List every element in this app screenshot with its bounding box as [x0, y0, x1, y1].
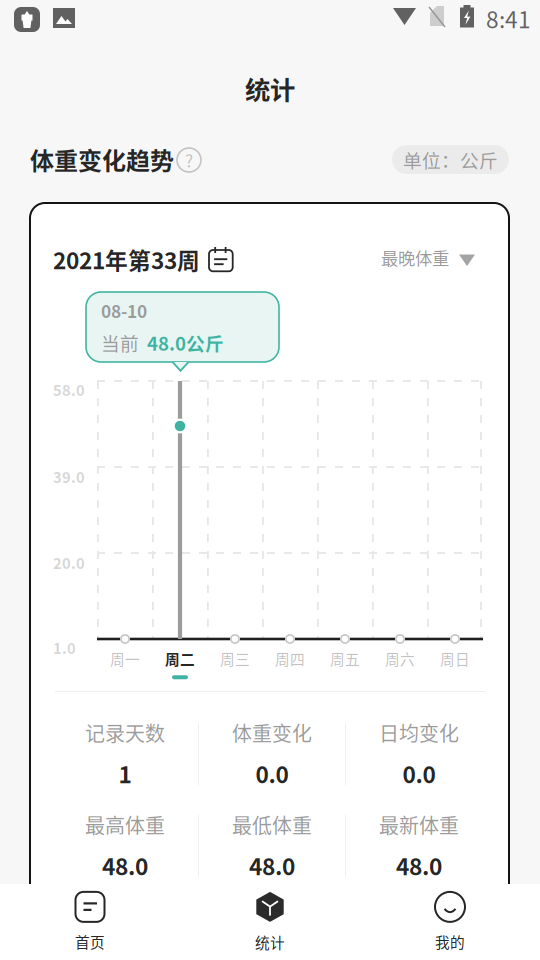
- staticText: 48.0: [249, 849, 295, 882]
- button[interactable]: 选择日期: [209, 247, 233, 272]
- staticText: 最高体重: [85, 810, 165, 839]
- staticText: 体重变化趋势: [30, 142, 174, 177]
- staticText: 48.0公斤: [147, 329, 224, 356]
- staticText: 单位：公斤: [403, 146, 498, 173]
- button[interactable]: 我的: [360, 884, 540, 960]
- staticText: 体重变化: [232, 718, 312, 747]
- staticText: 39.0: [53, 466, 85, 487]
- staticText: 最新体重: [379, 810, 459, 839]
- staticText: 48.0: [396, 849, 442, 882]
- staticText: 08-10: [101, 298, 147, 323]
- staticText: 统计: [245, 70, 295, 107]
- staticText: 周一: [110, 648, 140, 669]
- button[interactable]: 最晚体重: [381, 245, 475, 270]
- button[interactable]: 说明: [177, 148, 201, 172]
- staticText: 当前: [101, 329, 139, 356]
- button[interactable]: 单位：公斤: [392, 145, 509, 174]
- staticText: 我的: [435, 931, 465, 952]
- staticText: 0.0: [255, 757, 288, 790]
- staticText: 周六: [385, 648, 415, 669]
- staticText: 周四: [275, 648, 305, 669]
- staticText: 日均变化: [379, 718, 459, 747]
- staticText: 周日: [440, 648, 470, 669]
- staticText: ?: [185, 147, 193, 173]
- staticText: 1.0: [53, 637, 76, 658]
- staticText: 58.0: [53, 379, 85, 400]
- staticText: 0.0: [402, 757, 435, 790]
- staticText: 1: [118, 757, 131, 790]
- staticText: 2021年第33周: [53, 243, 200, 276]
- button[interactable]: 统计: [180, 884, 360, 960]
- staticText: 最低体重: [232, 810, 312, 839]
- staticText: 周五: [330, 648, 360, 669]
- staticText: 统计: [255, 931, 285, 953]
- staticText: 周三: [220, 648, 250, 669]
- staticText: 8:41: [486, 2, 531, 35]
- staticText: 首页: [75, 931, 105, 952]
- staticText: 最晚体重: [381, 245, 449, 270]
- staticText: 48.0: [102, 849, 148, 882]
- staticText: 记录天数: [85, 718, 165, 747]
- staticText: 周二: [165, 648, 195, 669]
- staticText: 20.0: [53, 552, 85, 573]
- button[interactable]: 首页: [0, 884, 180, 960]
